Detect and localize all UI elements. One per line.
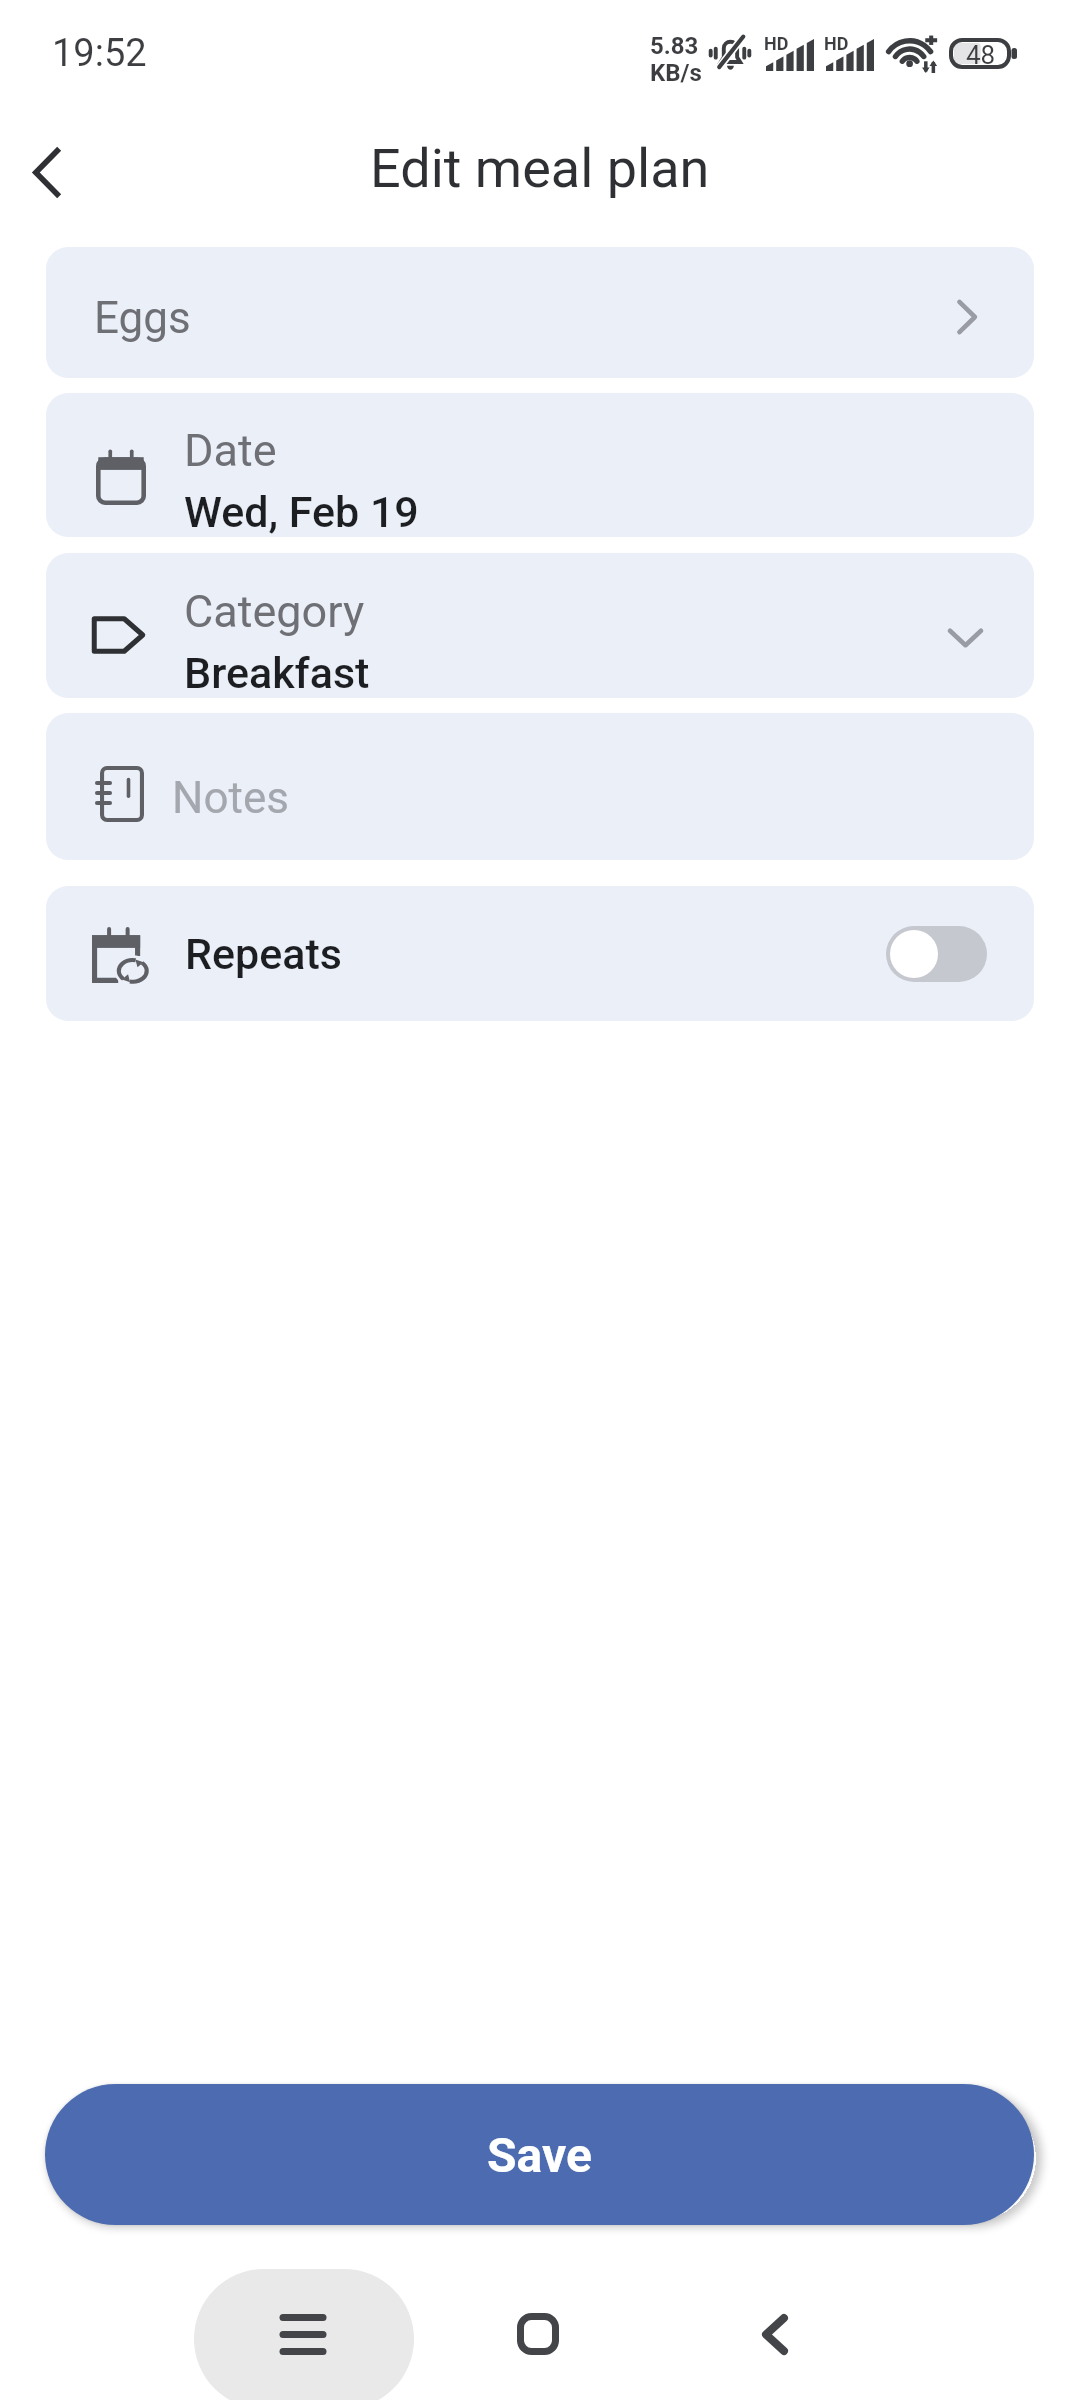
staticText: Wed, Feb 19 <box>184 487 419 537</box>
button[interactable]: Recents <box>194 2269 414 2400</box>
staticText: Edit meal plan <box>370 137 710 200</box>
staticText: KB/s <box>650 59 702 87</box>
staticText: HD <box>764 33 789 54</box>
staticText: Category <box>184 585 365 638</box>
staticText: 48 <box>966 40 996 70</box>
button[interactable]: Back <box>0 127 94 217</box>
button[interactable]: Eggs <box>46 247 1034 378</box>
staticText: Breakfast <box>184 648 370 698</box>
button[interactable]: Save <box>45 2084 1034 2225</box>
button[interactable]: Date <box>46 393 1034 537</box>
staticText: Repeats <box>185 929 342 979</box>
staticText: Eggs <box>94 292 191 344</box>
staticText: 5.83 <box>650 32 699 60</box>
staticText: Notes <box>172 772 289 824</box>
button[interactable]: Repeats toggle <box>886 926 987 982</box>
staticText: Save <box>487 2127 592 2183</box>
staticText: Date <box>184 424 277 477</box>
staticText: 19:52 <box>52 31 147 76</box>
staticText: HD <box>824 33 849 54</box>
button[interactable]: Home <box>483 2279 593 2389</box>
button[interactable]: Back <box>720 2279 830 2389</box>
button[interactable]: Category <box>46 553 1034 698</box>
button[interactable]: Notes <box>46 713 1034 860</box>
button[interactable]: Repeats <box>46 886 1034 1021</box>
